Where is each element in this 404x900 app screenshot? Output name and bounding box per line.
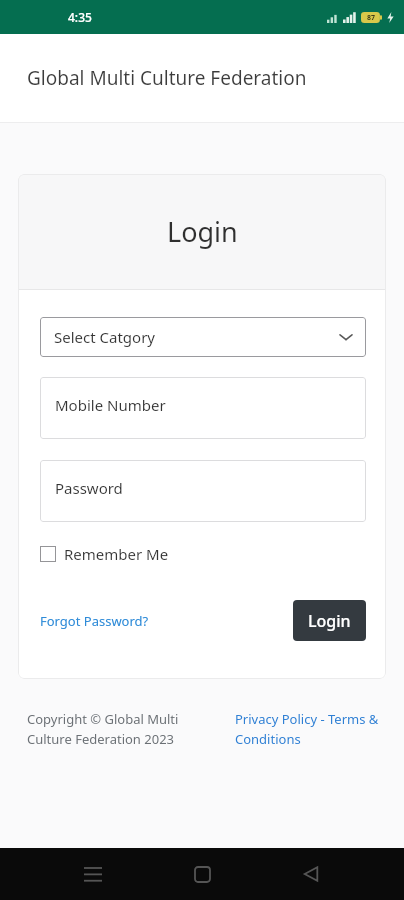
- button[interactable]: Back: [290, 853, 332, 895]
- staticText: Forgot Password?: [40, 612, 149, 630]
- staticText: Mobile Number: [55, 395, 166, 415]
- button[interactable]: Privacy Policy - Terms & Conditions: [235, 710, 380, 748]
- staticText: 87: [367, 13, 376, 23]
- button[interactable]: Login: [293, 600, 366, 641]
- button[interactable]: Select Catgory: [40, 317, 366, 357]
- staticText: Password: [55, 478, 123, 498]
- staticText: Global Multi Culture Federation: [27, 65, 307, 91]
- staticText: Login: [308, 610, 351, 632]
- staticText: Copyright © Global Multi Culture Federat…: [27, 710, 187, 748]
- staticText: Login: [167, 213, 238, 250]
- button[interactable]: Password: [40, 460, 366, 522]
- staticText: Remember Me: [64, 544, 169, 564]
- staticText: Select Catgory: [54, 327, 340, 347]
- button[interactable]: Remember Me: [40, 544, 175, 564]
- button[interactable]: Forgot Password?: [40, 608, 149, 634]
- button[interactable]: Recents: [72, 853, 114, 895]
- staticText: Privacy Policy - Terms & Conditions: [235, 710, 380, 748]
- staticText: 4:35: [68, 9, 92, 25]
- button[interactable]: Home: [181, 853, 223, 895]
- button[interactable]: Mobile Number: [40, 377, 366, 439]
